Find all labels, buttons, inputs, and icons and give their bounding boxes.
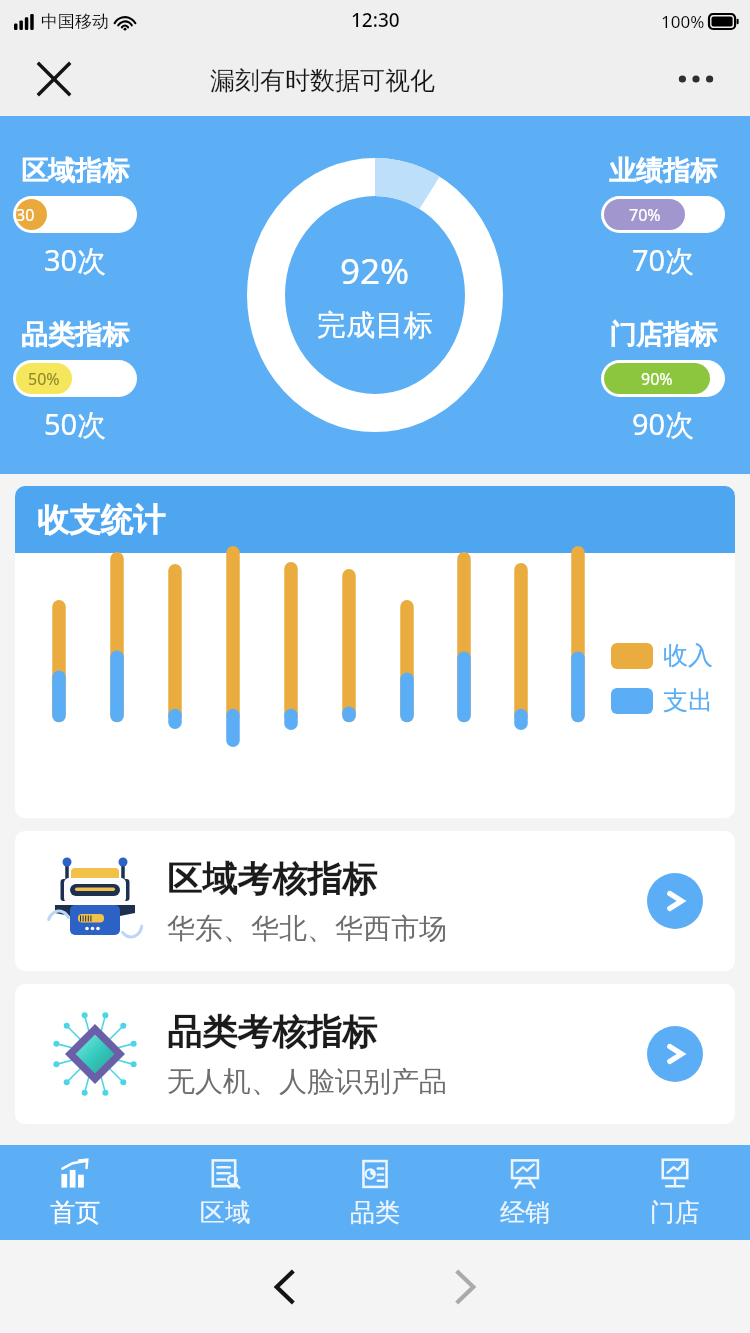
staticText: 100% bbox=[661, 10, 705, 33]
staticText: 收支统计 bbox=[37, 500, 165, 540]
staticText: 30% bbox=[16, 204, 47, 226]
button[interactable]: 门店 bbox=[600, 1145, 750, 1240]
button[interactable]: 30% bbox=[13, 196, 137, 233]
staticText: 完成目标 bbox=[317, 307, 433, 344]
staticText: 品类 bbox=[350, 1197, 400, 1228]
staticText: 区域考核指标 bbox=[167, 857, 377, 901]
staticText: 50% bbox=[28, 368, 60, 390]
button[interactable]: Open 品类考核指标 bbox=[647, 1026, 703, 1082]
button[interactable]: 首页 bbox=[0, 1145, 150, 1240]
staticText: 70次 bbox=[632, 240, 695, 280]
staticText: 无人机、人脸识别产品 bbox=[167, 1064, 447, 1099]
button[interactable]: Forward bbox=[435, 1257, 495, 1317]
button[interactable]: 50% bbox=[13, 360, 137, 397]
button[interactable]: 区域考核指标 bbox=[15, 831, 735, 971]
button[interactable]: Back bbox=[255, 1257, 315, 1317]
button[interactable]: More options bbox=[672, 55, 720, 103]
staticText: 业绩指标 bbox=[609, 154, 717, 188]
staticText: 品类指标 bbox=[21, 318, 129, 352]
button[interactable]: 品类考核指标 bbox=[15, 984, 735, 1124]
staticText: 华东、华北、华西市场 bbox=[167, 911, 447, 946]
button[interactable]: 区域 bbox=[150, 1145, 300, 1240]
button[interactable]: Close bbox=[32, 57, 76, 101]
staticText: 首页 bbox=[50, 1197, 100, 1228]
staticText: 90次 bbox=[632, 404, 695, 444]
staticText: 92% bbox=[340, 247, 410, 295]
staticText: 漏刻有时数据可视化 (LockDataV) bbox=[210, 62, 540, 96]
staticText: 50次 bbox=[44, 404, 107, 444]
button[interactable]: 经销 bbox=[450, 1145, 600, 1240]
staticText: 中国移动 bbox=[41, 11, 109, 32]
staticText: 品类考核指标 bbox=[167, 1010, 377, 1054]
staticText: 收入 bbox=[663, 640, 713, 671]
button[interactable]: 70% bbox=[601, 196, 725, 233]
staticText: 经销 bbox=[500, 1197, 550, 1228]
staticText: 12:30 bbox=[351, 7, 400, 33]
staticText: 90% bbox=[641, 368, 673, 390]
button[interactable]: 品类 bbox=[300, 1145, 450, 1240]
staticText: 门店指标 bbox=[609, 318, 717, 352]
staticText: 70% bbox=[629, 204, 661, 226]
staticText: 支出 bbox=[663, 685, 713, 716]
button[interactable]: 90% bbox=[601, 360, 725, 397]
staticText: 30次 bbox=[44, 240, 107, 280]
staticText: 区域指标 bbox=[21, 154, 129, 188]
staticText: 区域 bbox=[200, 1197, 250, 1228]
button[interactable]: Open 区域考核指标 bbox=[647, 873, 703, 929]
staticText: 门店 bbox=[650, 1197, 700, 1228]
